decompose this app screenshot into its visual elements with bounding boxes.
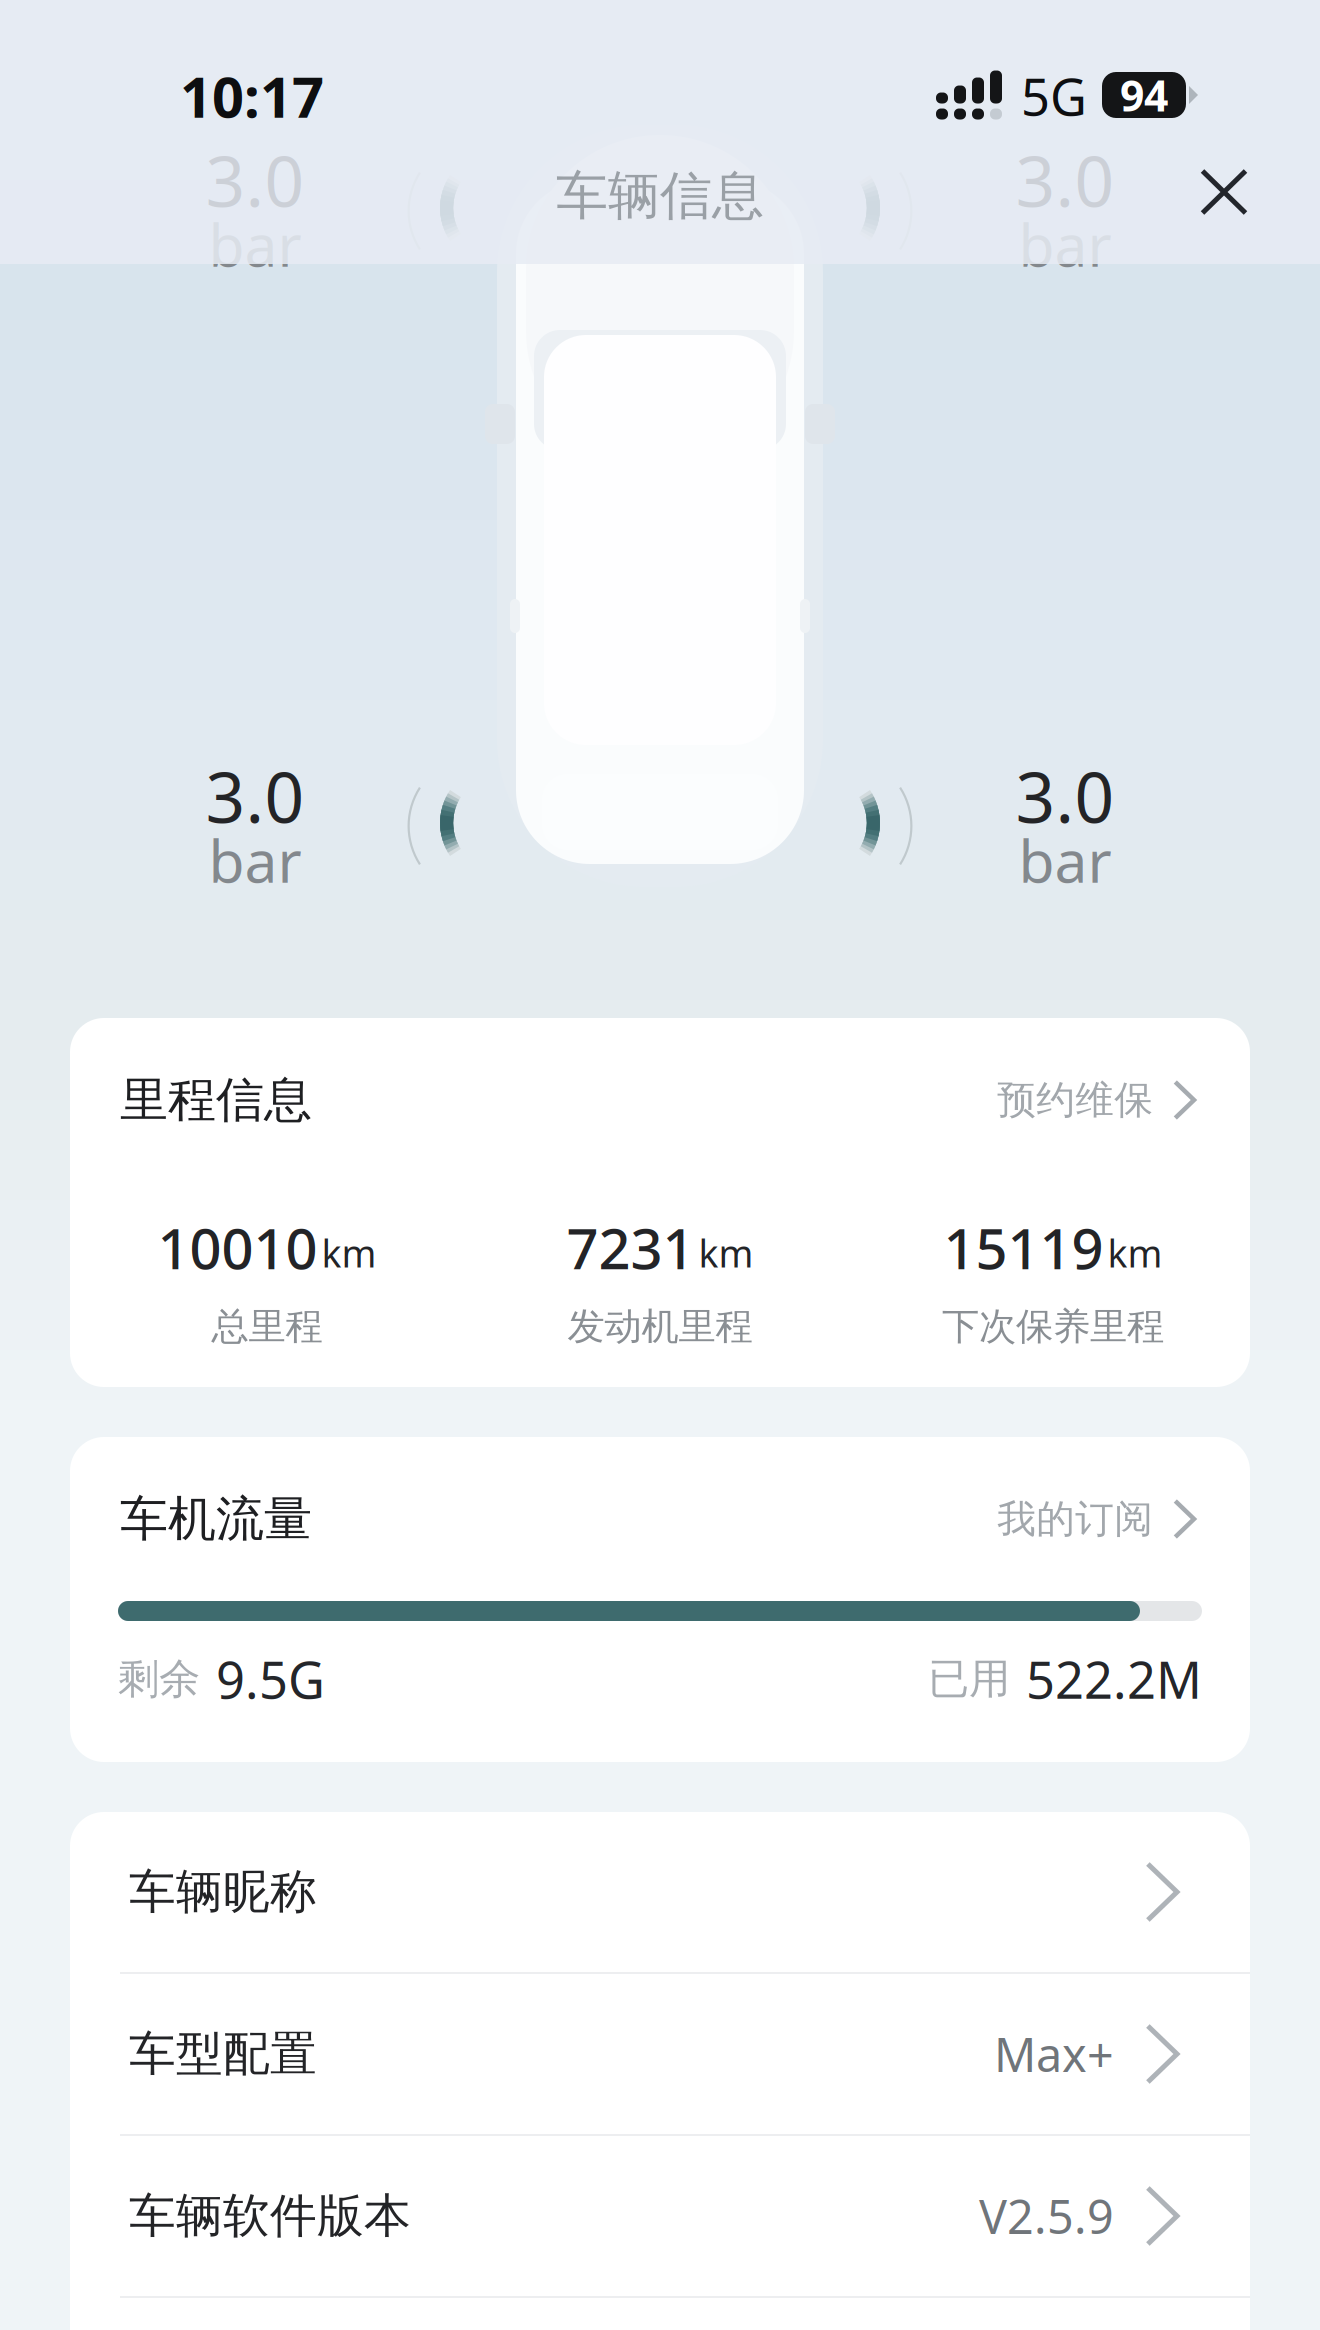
staticText: 7231 [566, 1210, 694, 1285]
staticText: V2.5.9 [979, 2185, 1114, 2247]
staticText: 车机流量 [120, 1489, 312, 1548]
staticText: 车辆昵称 [129, 1863, 317, 1921]
staticText: bar [1018, 821, 1111, 899]
staticText: 94 [1120, 67, 1168, 123]
staticText: bar [208, 821, 301, 899]
staticText: bar [208, 205, 301, 283]
staticText: 车辆信息 [556, 164, 764, 228]
staticText: 已用 [928, 1654, 1010, 1704]
staticText: 下次保养里程 [942, 1304, 1164, 1349]
staticText: 我的订阅 [997, 1495, 1153, 1543]
staticText: 522.2M [1026, 1645, 1202, 1713]
button[interactable]: 车型配置 [70, 1974, 1250, 2134]
button[interactable]: Close [1174, 143, 1273, 241]
staticText: km [698, 1228, 753, 1278]
staticText: 车型配置 [129, 2025, 317, 2083]
staticText: 发动机里程 [567, 1304, 752, 1349]
button[interactable]: 车辆软件版本 [70, 2136, 1250, 2296]
staticText: km [321, 1228, 376, 1278]
staticText: km [1107, 1228, 1162, 1278]
staticText: bar [1018, 205, 1111, 283]
staticText: 3.0 [205, 750, 304, 842]
button[interactable]: 预约维保 [997, 1076, 1194, 1124]
staticText: 车辆软件版本 [129, 2187, 411, 2245]
staticText: 3.0 [205, 134, 304, 226]
staticText: 3.0 [1015, 750, 1114, 842]
button[interactable]: 车辆昵称 [70, 1812, 1250, 1972]
staticText: 里程信息 [120, 1070, 312, 1129]
staticText: 总里程 [211, 1304, 322, 1349]
staticText: 9.5G [216, 1645, 325, 1713]
staticText: 15119 [943, 1210, 1103, 1285]
staticText: Max+ [994, 2023, 1114, 2085]
staticText: 10:17 [180, 59, 324, 133]
button[interactable]: 我的订阅 [997, 1495, 1194, 1543]
staticText: 10010 [157, 1210, 317, 1285]
staticText: 3.0 [1015, 134, 1114, 226]
staticText: 预约维保 [997, 1076, 1153, 1124]
staticText: 5G [1021, 62, 1087, 130]
staticText: 剩余 [118, 1654, 200, 1704]
